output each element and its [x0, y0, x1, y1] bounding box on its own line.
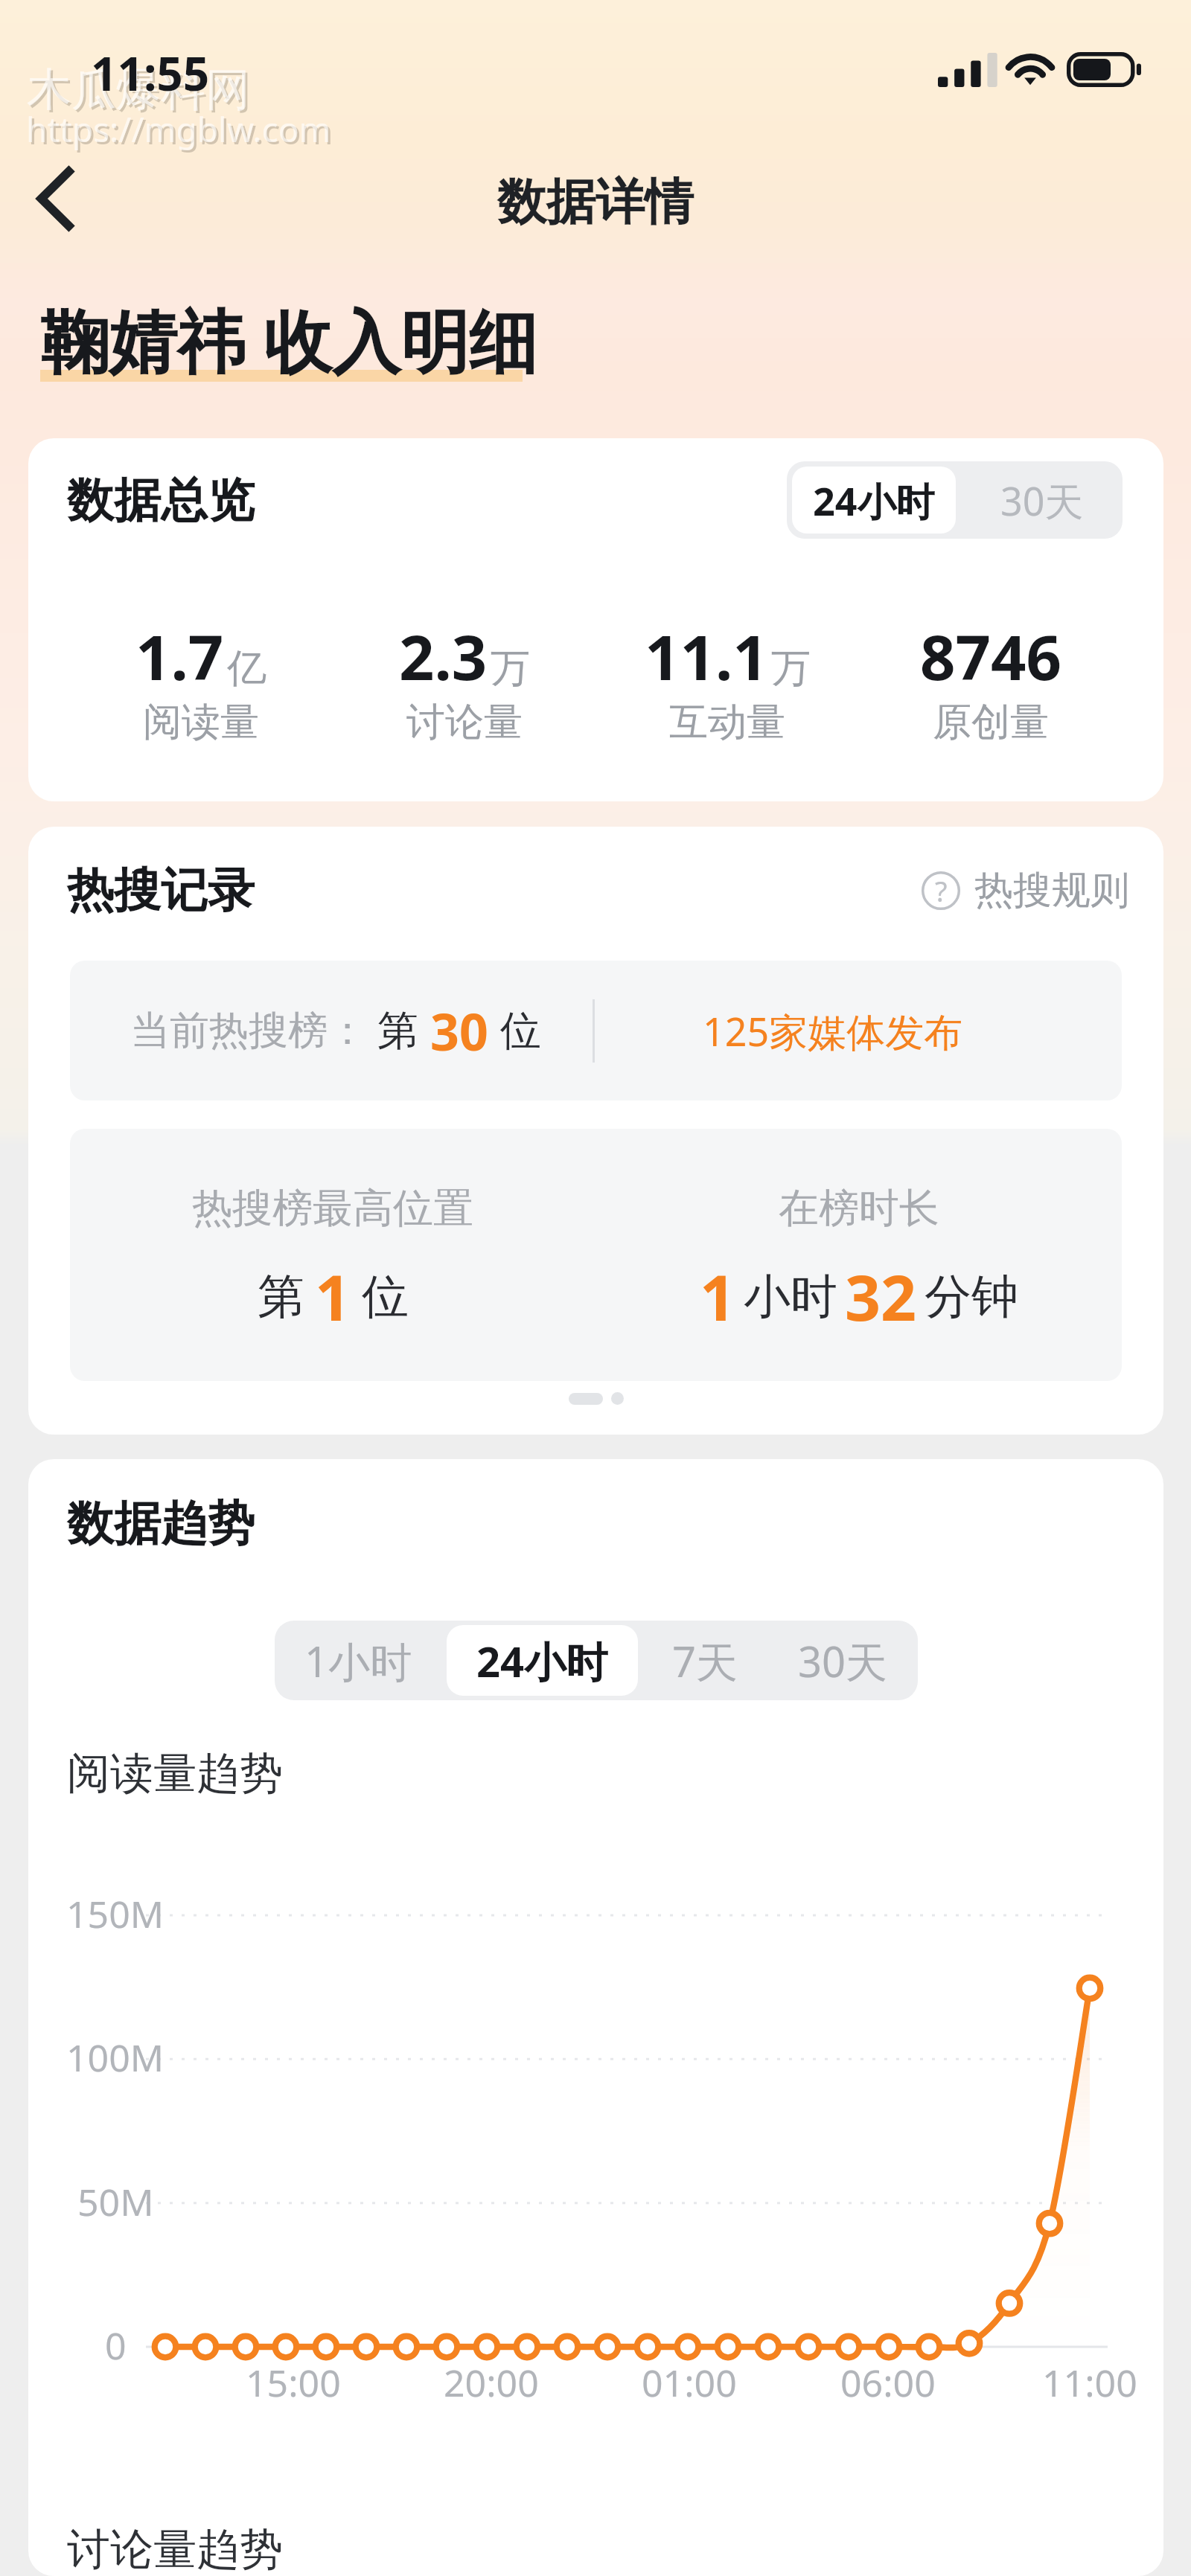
staticText: 32 [845, 1254, 917, 1339]
staticText: 24小时 [813, 474, 935, 527]
staticText: 2.3 [399, 614, 488, 698]
staticText: 数据详情 [497, 171, 694, 233]
staticText: 7天 [672, 1633, 738, 1689]
button[interactable]: 24小时 [792, 467, 956, 534]
staticText: 第 [258, 1267, 304, 1326]
staticText: 讨论量 [406, 698, 523, 747]
staticText: 30天 [1000, 474, 1084, 527]
staticText: 位 [362, 1267, 409, 1326]
staticText: 24小时 [476, 1633, 608, 1689]
staticText: 木瓜爆料网 [27, 62, 250, 118]
staticText: 热搜规则 [974, 866, 1129, 915]
staticText: 50M [77, 2176, 154, 2227]
staticText: 15:00 [246, 2357, 341, 2408]
staticText: https://mgblw.com [28, 108, 333, 155]
staticText: 20:00 [444, 2357, 539, 2408]
button[interactable]: 125家媒体发布 [703, 991, 963, 1071]
staticText: 位 [500, 1005, 541, 1057]
staticText: 150M [66, 1888, 165, 1939]
staticText: 小时 [744, 1267, 837, 1326]
button[interactable]: 24小时 [447, 1625, 638, 1696]
staticText: 当前热搜榜： [130, 1006, 367, 1056]
staticText: 01:00 [642, 2357, 737, 2408]
staticText: 30天 [798, 1633, 888, 1689]
button[interactable]: 1小时 [275, 1621, 442, 1700]
button[interactable]: ? [921, 866, 1129, 915]
staticText: 在榜时长 [779, 1183, 939, 1234]
staticText: 06:00 [840, 2357, 936, 2408]
staticText: 0 [105, 2320, 127, 2371]
staticText: 万 [771, 644, 811, 693]
staticText: 互动量 [669, 698, 785, 747]
staticText: 万 [491, 644, 530, 693]
staticText: 11:55 [91, 42, 210, 104]
staticText: 数据趋势 [67, 1494, 255, 1553]
button[interactable]: 7天 [642, 1621, 768, 1700]
staticText: 阅读量 [143, 698, 259, 747]
staticText: 8746 [920, 614, 1061, 698]
staticText: 热搜榜最高位置 [192, 1183, 473, 1234]
staticText: 鞠婧祎 收入明细 [40, 293, 537, 387]
button[interactable]: 30天 [961, 461, 1123, 539]
staticText: 第 [377, 1005, 418, 1057]
button[interactable]: Back [13, 137, 100, 223]
staticText: https://mgblw.com [26, 106, 331, 153]
staticText: 原创量 [933, 698, 1049, 747]
staticText: 1.7 [135, 614, 224, 698]
staticText: 阅读量趋势 [67, 1746, 283, 1801]
staticText: 100M [66, 2032, 165, 2083]
staticText: 热搜记录 [67, 861, 255, 920]
staticText: 11:00 [1042, 2357, 1137, 2408]
staticText: 数据总览 [67, 471, 255, 530]
staticText: 1小时 [304, 1633, 412, 1689]
staticText: 分钟 [925, 1267, 1018, 1326]
staticText: 1 [700, 1254, 736, 1339]
staticText: 11.1 [645, 614, 768, 698]
staticText: 30 [430, 996, 488, 1066]
button[interactable]: 30天 [768, 1621, 918, 1700]
staticText: 木瓜爆料网 [29, 64, 252, 121]
staticText: ? [935, 871, 948, 910]
staticText: 1 [315, 1254, 351, 1339]
staticText: 讨论量趋势 [67, 2522, 283, 2576]
staticText: 亿 [227, 644, 266, 693]
staticText: 125家媒体发布 [703, 1005, 963, 1057]
